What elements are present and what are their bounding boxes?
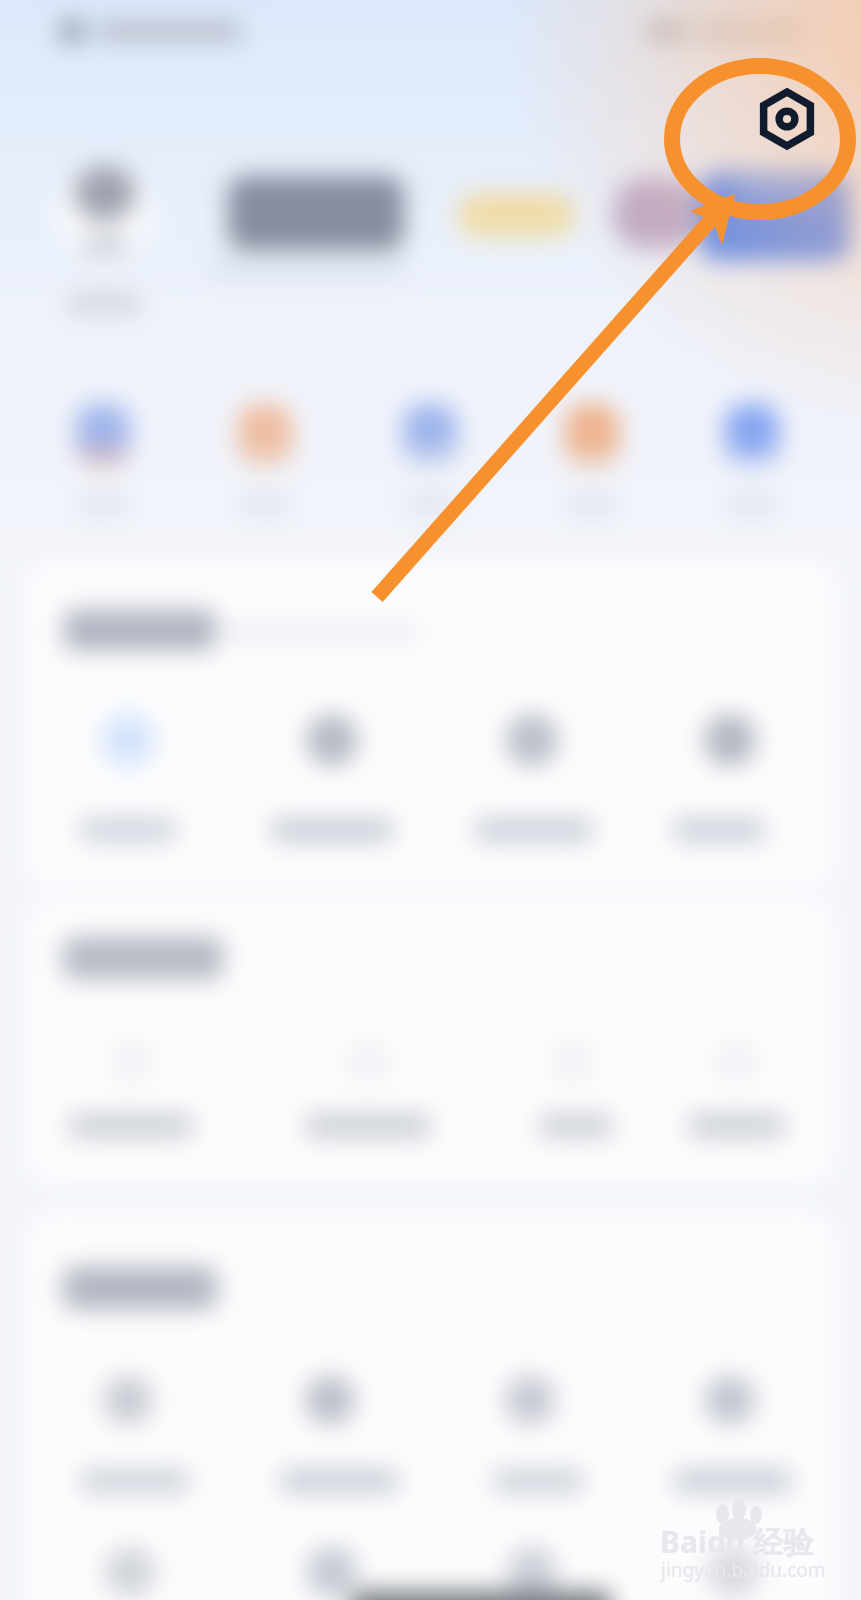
button[interactable] xyxy=(651,1022,821,1154)
button[interactable] xyxy=(645,1357,815,1509)
button[interactable] xyxy=(487,1022,657,1154)
button[interactable]: Settings xyxy=(757,89,817,149)
button[interactable] xyxy=(447,1529,617,1600)
button[interactable] xyxy=(46,1022,216,1154)
button[interactable] xyxy=(384,398,476,523)
button[interactable] xyxy=(57,398,149,523)
button[interactable] xyxy=(283,1022,453,1154)
button[interactable] xyxy=(648,1529,818,1600)
button[interactable] xyxy=(700,172,850,260)
button[interactable] xyxy=(43,1357,213,1509)
button[interactable] xyxy=(447,696,617,858)
button[interactable] xyxy=(247,1529,417,1600)
button[interactable] xyxy=(445,1357,615,1509)
button[interactable] xyxy=(45,1529,215,1600)
button[interactable] xyxy=(58,164,152,258)
button[interactable] xyxy=(245,1357,415,1509)
button[interactable] xyxy=(219,398,311,523)
button[interactable] xyxy=(546,398,638,523)
button[interactable] xyxy=(247,696,417,858)
button[interactable] xyxy=(43,696,213,858)
button[interactable] xyxy=(645,696,815,858)
button[interactable] xyxy=(706,398,798,523)
staticText: Baidu 经验 xyxy=(660,1521,814,1562)
staticText: jingyan.baidu.com xyxy=(661,1557,826,1583)
